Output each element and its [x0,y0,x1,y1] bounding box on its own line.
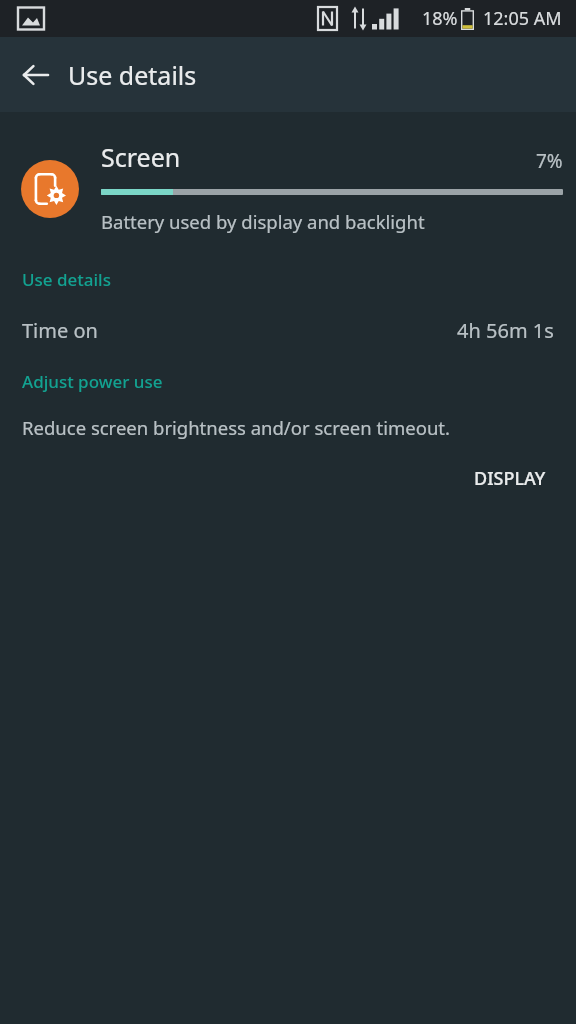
staticText: 18% [422,6,458,31]
staticText: Time on [22,317,457,344]
staticText: 7% [536,148,563,174]
staticText: Screen [101,140,536,174]
staticText: Use details [68,58,197,92]
staticText: Battery used by display and backlight [101,209,425,234]
staticText: DISPLAY [474,466,546,491]
button[interactable]: Screen [0,132,576,242]
button[interactable]: DISPLAY [458,456,562,501]
staticText: Adjust power use [22,370,163,393]
staticText: Reduce screen brightness and/or screen t… [22,415,450,440]
staticText: Use details [22,268,111,291]
staticText: 12:05 AM [483,6,562,31]
button[interactable]: Time on [0,311,576,350]
button[interactable]: Back [12,51,60,99]
staticText: 4h 56m 1s [457,317,554,344]
